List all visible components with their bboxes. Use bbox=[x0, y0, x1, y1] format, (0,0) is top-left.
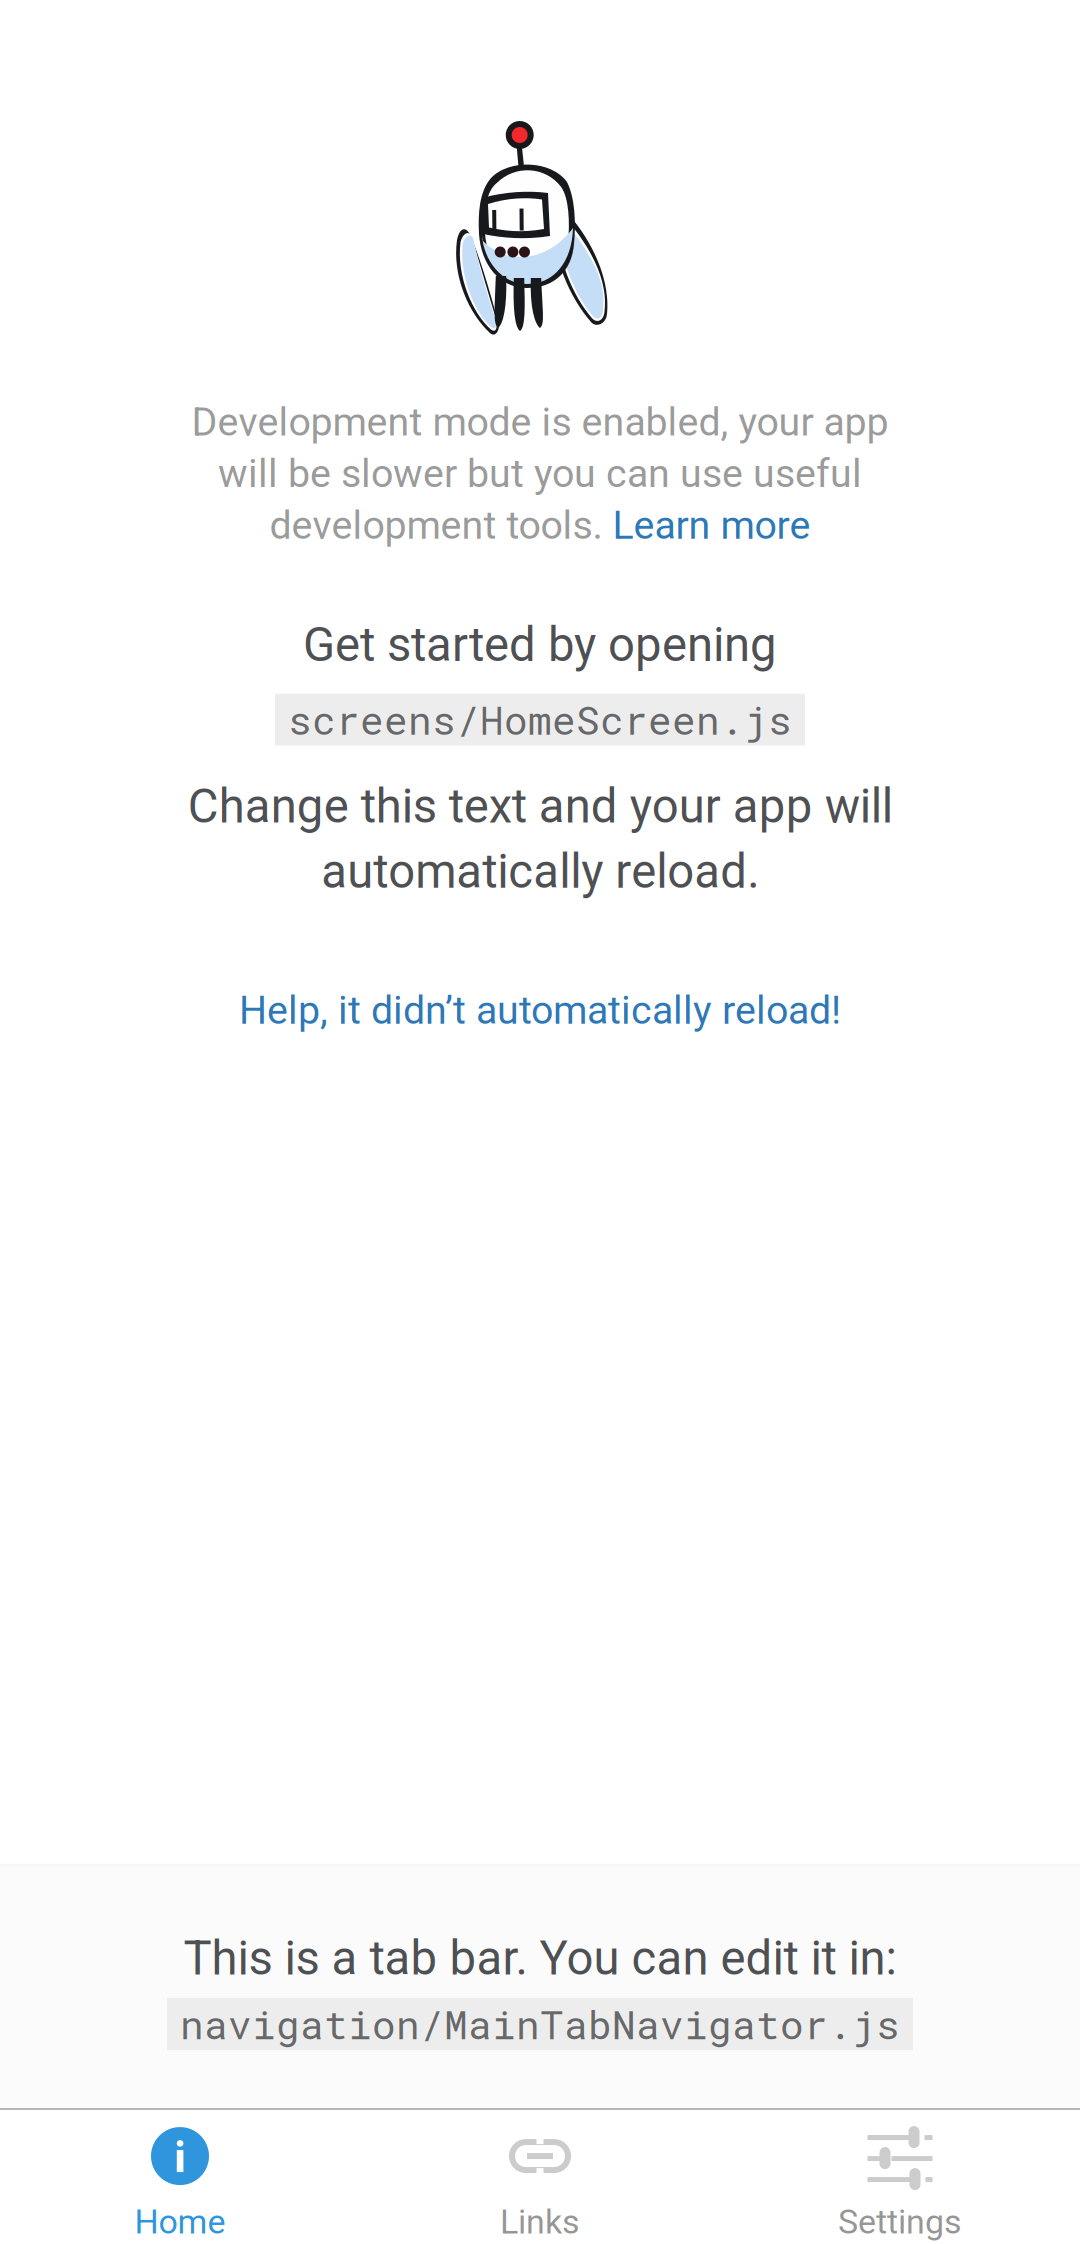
staticText: Settings bbox=[838, 2202, 962, 2242]
button[interactable]: Learn more bbox=[612, 502, 810, 548]
button[interactable]: Home bbox=[0, 2108, 360, 2244]
button[interactable]: Links bbox=[360, 2108, 720, 2244]
staticText: screens/HomeScreen.js bbox=[288, 694, 792, 746]
staticText: development tools. bbox=[269, 502, 612, 548]
staticText: Home bbox=[134, 2202, 225, 2242]
staticText: Help, it didn’t automatically reload! bbox=[239, 987, 841, 1033]
staticText: will be slower but you can use useful bbox=[218, 451, 862, 497]
staticText: Get started by opening bbox=[303, 617, 777, 673]
staticText: Change this text and your app will autom… bbox=[187, 779, 892, 899]
staticText: Development mode is enabled, your app bbox=[191, 399, 888, 445]
staticText: Learn more bbox=[612, 502, 810, 548]
button[interactable]: Settings bbox=[720, 2108, 1080, 2244]
staticText: navigation/MainTabNavigator.js bbox=[180, 1998, 900, 2050]
staticText: This is a tab bar. You can edit it in: bbox=[183, 1931, 896, 1986]
button[interactable]: Help, it didn’t automatically reload! bbox=[239, 971, 841, 1049]
staticText: Links bbox=[500, 2202, 580, 2242]
